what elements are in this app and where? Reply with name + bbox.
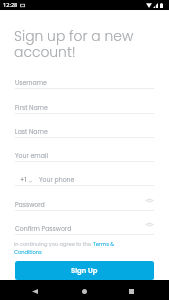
staticText: Your phone <box>39 175 75 184</box>
staticText: Last Name <box>15 127 48 136</box>
staticText: Sign Up <box>71 266 98 276</box>
button[interactable]: Show password <box>144 195 155 205</box>
staticText: 12:28 <box>3 1 18 9</box>
staticText: Your email <box>15 151 48 160</box>
button[interactable]: Back <box>24 284 46 298</box>
button[interactable]: Password <box>0 195 169 211</box>
button[interactable]: Show password <box>144 219 155 229</box>
button[interactable]: Last Name <box>0 122 169 138</box>
button[interactable]: Sign Up <box>15 261 154 280</box>
button[interactable]: First Name <box>0 98 169 114</box>
staticText: Username <box>15 78 47 87</box>
button[interactable]: Home <box>73 284 95 298</box>
staticText: account! <box>14 42 76 61</box>
button[interactable]: +1 <box>0 170 169 186</box>
staticText: Sign up for a new <box>14 26 134 45</box>
staticText: Password <box>15 200 45 209</box>
staticText: +1 <box>20 175 27 184</box>
button[interactable]: Recent apps <box>120 284 142 298</box>
button[interactable]: Username <box>0 73 169 89</box>
staticText: In continuing you agree to the <box>14 241 93 248</box>
staticText: Terms & <box>93 241 115 248</box>
button[interactable]: Confirm Password <box>0 219 169 235</box>
button[interactable]: Your email <box>0 146 169 162</box>
staticText: Confirm Password <box>15 224 72 233</box>
staticText: First Name <box>15 103 48 112</box>
button[interactable]: Conditions <box>14 249 42 256</box>
